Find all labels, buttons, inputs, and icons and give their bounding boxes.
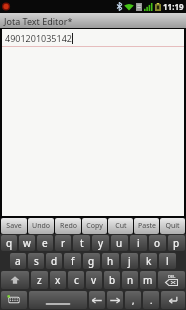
staticText: u <box>116 236 123 250</box>
button[interactable]: Enter <box>161 291 185 309</box>
button[interactable]: Jota Text Editor* <box>0 13 186 28</box>
staticText: s <box>34 254 39 268</box>
button[interactable]: n <box>122 271 138 289</box>
staticText: q <box>6 236 13 250</box>
staticText: p <box>173 236 180 250</box>
staticText: x <box>55 273 61 287</box>
staticText: , <box>132 294 135 306</box>
button[interactable]: Delete <box>158 271 185 289</box>
button[interactable]: p <box>168 235 185 251</box>
staticText: l <box>166 254 169 268</box>
button[interactable]: x <box>50 271 66 289</box>
button[interactable]: r <box>55 235 71 251</box>
staticText: w <box>23 236 31 250</box>
button[interactable]: i <box>130 235 147 251</box>
button[interactable]: q <box>1 235 17 251</box>
staticText: i <box>137 236 140 250</box>
button[interactable]: y <box>92 235 109 251</box>
staticText: g <box>88 254 95 268</box>
button[interactable]: g <box>83 253 100 269</box>
staticText: o <box>154 236 161 250</box>
staticText: t <box>80 236 84 250</box>
button[interactable]: Paste <box>134 218 159 234</box>
button[interactable]: Space <box>29 291 87 309</box>
button[interactable]: m <box>140 271 156 289</box>
staticText: f <box>71 254 75 268</box>
button[interactable]: k <box>140 253 157 269</box>
button[interactable]: Left <box>89 291 105 309</box>
staticText: m <box>143 273 153 287</box>
button[interactable]: e <box>37 235 53 251</box>
button[interactable]: d <box>46 253 62 269</box>
button[interactable]: o <box>149 235 166 251</box>
button[interactable]: z <box>31 271 48 289</box>
staticText: Undo <box>32 221 50 231</box>
button[interactable]: Redo <box>55 218 81 234</box>
button[interactable]: . <box>143 291 159 309</box>
staticText: . <box>150 294 153 306</box>
button[interactable]: Save <box>1 218 27 234</box>
button[interactable]: a <box>10 253 26 269</box>
staticText: Save <box>6 221 22 231</box>
button[interactable]: u <box>111 235 128 251</box>
button[interactable]: t <box>73 235 90 251</box>
staticText: v <box>91 273 97 287</box>
staticText: Jota Text Editor* <box>4 15 73 27</box>
staticText: z <box>37 273 42 287</box>
button[interactable]: s <box>28 253 44 269</box>
staticText: Copy <box>86 221 103 231</box>
staticText: c <box>74 273 79 287</box>
button[interactable]: Switch keyboard <box>1 291 27 309</box>
button[interactable]: Copy <box>82 218 107 234</box>
button[interactable]: b <box>104 271 120 289</box>
button[interactable]: Undo <box>28 218 54 234</box>
button[interactable]: w <box>19 235 35 251</box>
staticText: j <box>128 254 131 268</box>
staticText: DEL <box>168 274 176 279</box>
staticText: n <box>127 273 134 287</box>
button[interactable]: Right <box>107 291 123 309</box>
button[interactable]: j <box>121 253 138 269</box>
button[interactable]: Cut <box>108 218 133 234</box>
staticText: d <box>51 254 58 268</box>
staticText: Cut <box>115 221 127 231</box>
staticText: Redo <box>60 221 77 231</box>
staticText: r <box>61 236 66 250</box>
staticText: k <box>146 254 152 268</box>
button[interactable]: 4901201035142 <box>2 29 184 216</box>
staticText: a <box>15 254 21 268</box>
button[interactable]: Quit <box>160 218 185 234</box>
staticText: 4901201035142 <box>5 32 72 44</box>
staticText: Quit <box>165 221 180 231</box>
button[interactable]: Shift <box>1 271 29 289</box>
staticText: h <box>107 254 114 268</box>
other: Notification <box>2 1 11 12</box>
button[interactable]: , <box>125 291 141 309</box>
staticText: y <box>98 236 104 250</box>
staticText: b <box>109 273 116 287</box>
button[interactable]: v <box>86 271 102 289</box>
staticText: 11:19 <box>163 1 184 12</box>
staticText: Paste <box>138 221 156 231</box>
button[interactable]: l <box>159 253 176 269</box>
button[interactable]: h <box>102 253 119 269</box>
button[interactable]: c <box>68 271 84 289</box>
button[interactable]: f <box>64 253 81 269</box>
staticText: e <box>42 236 48 250</box>
